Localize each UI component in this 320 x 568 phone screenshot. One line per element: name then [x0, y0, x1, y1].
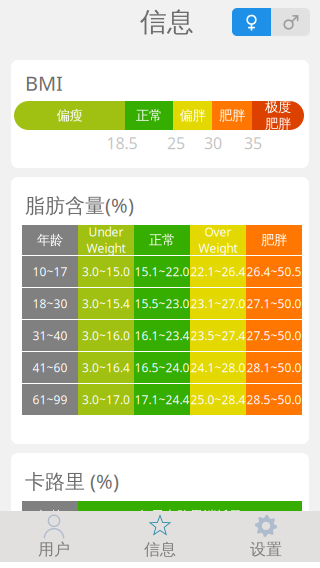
- staticText: 卡路里 (%): [25, 467, 119, 495]
- staticText: 3.0~16.4: [82, 359, 130, 376]
- staticText: 31~40: [32, 327, 67, 344]
- staticText: 15.1~22.0: [134, 263, 189, 280]
- staticText: 肥胖: [219, 107, 245, 124]
- staticText: 设置: [250, 539, 282, 560]
- staticText: 17.1~24.4: [134, 391, 189, 408]
- staticText: 10~17: [32, 263, 67, 280]
- staticText: 18.5: [106, 132, 137, 154]
- staticText: 41~60: [32, 359, 67, 376]
- staticText: 27.1~50.0: [246, 295, 301, 312]
- staticText: 偏胖: [179, 107, 205, 124]
- button[interactable]: Male: [271, 8, 310, 36]
- staticText: 正常: [149, 232, 175, 248]
- button[interactable]: Female: [232, 8, 271, 36]
- staticText: 信息: [140, 5, 194, 39]
- staticText: 极度: [265, 99, 291, 115]
- staticText: 肥胖: [261, 232, 287, 248]
- button[interactable]: 设置: [213, 511, 319, 562]
- staticText: 年龄: [37, 508, 63, 524]
- staticText: 24.1~28.0: [190, 359, 245, 376]
- staticText: 脂肪含量(%): [25, 191, 134, 219]
- staticText: 每天卡路里消耗量: [138, 508, 242, 524]
- button[interactable]: 用户: [1, 511, 107, 562]
- staticText: 年龄: [37, 232, 63, 248]
- staticText: BMI: [25, 69, 63, 97]
- staticText: 18~30: [32, 295, 67, 312]
- staticText: Weight: [86, 240, 125, 256]
- staticText: 偏瘦: [56, 107, 82, 124]
- staticText: Under: [88, 224, 123, 240]
- staticText: 25.0~28.4: [190, 391, 245, 408]
- staticText: 26.4~50.5: [246, 263, 301, 280]
- staticText: 正常: [136, 107, 162, 124]
- staticText: 25: [167, 132, 185, 154]
- staticText: 30: [204, 132, 222, 154]
- staticText: 信息: [144, 539, 176, 560]
- staticText: 23.5~27.4: [190, 327, 245, 344]
- staticText: 61~99: [32, 391, 67, 408]
- staticText: 3.0~17.0: [82, 391, 130, 408]
- staticText: 15.5~23.0: [134, 295, 189, 312]
- staticText: 35: [244, 132, 262, 154]
- staticText: 16.5~24.0: [134, 359, 189, 376]
- staticText: 用户: [38, 539, 70, 560]
- button[interactable]: 信息: [107, 511, 213, 562]
- staticText: 28.1~50.0: [246, 359, 301, 376]
- staticText: 肥胖: [265, 115, 291, 132]
- staticText: 3.0~15.4: [82, 295, 130, 312]
- staticText: 16.1~23.4: [134, 327, 189, 344]
- staticText: 3.0~15.0: [82, 263, 130, 280]
- staticText: Weight: [198, 240, 237, 256]
- staticText: 27.5~50.0: [246, 327, 301, 344]
- staticText: 23.1~27.0: [190, 295, 245, 312]
- staticText: 3.0~16.0: [82, 327, 130, 344]
- staticText: 22.1~26.4: [190, 263, 245, 280]
- staticText: 28.5~50.0: [246, 391, 301, 408]
- staticText: Over: [204, 224, 231, 240]
